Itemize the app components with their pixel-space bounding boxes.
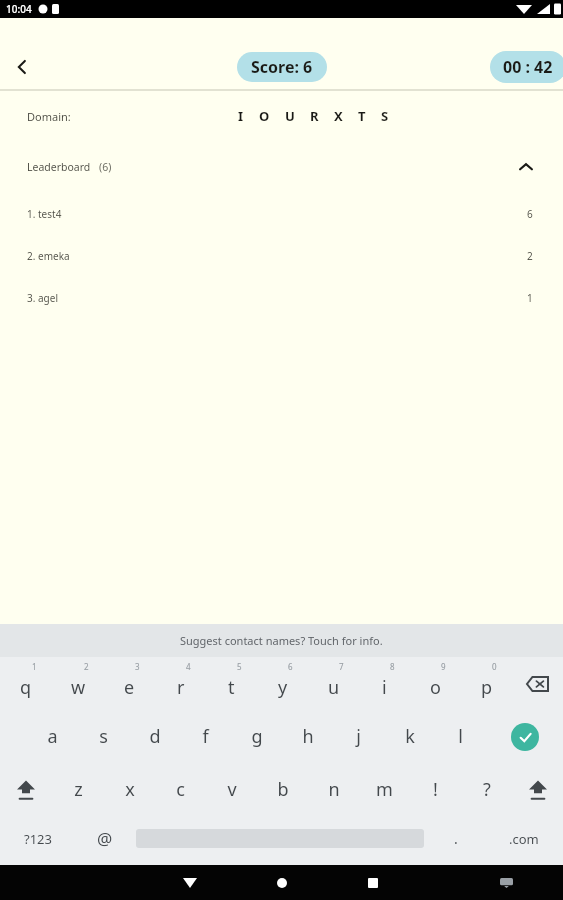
button[interactable]: Back <box>0 45 44 89</box>
button[interactable]: b <box>257 763 308 816</box>
staticText: 0 <box>492 661 497 672</box>
staticText: h <box>302 724 314 749</box>
button[interactable]: Back <box>170 865 210 900</box>
staticText: a <box>47 724 58 749</box>
staticText: x <box>125 777 135 802</box>
staticText: l <box>458 724 463 749</box>
button[interactable]: Leaderboard <box>0 141 563 193</box>
staticText: O <box>259 107 270 125</box>
button[interactable]: k <box>384 710 435 763</box>
staticText: 6 <box>527 207 533 221</box>
button[interactable]: Recents <box>353 865 393 900</box>
button[interactable]: 3 <box>104 657 155 710</box>
staticText: b <box>277 777 289 802</box>
button[interactable]: h <box>282 710 333 763</box>
staticText: v <box>227 777 237 802</box>
staticText: Suggest contact names? Touch for info. <box>180 633 383 648</box>
staticText: u <box>328 675 340 700</box>
staticText: 7 <box>339 661 344 672</box>
staticText: ? <box>483 777 491 802</box>
button[interactable]: ! <box>410 763 461 816</box>
button[interactable]: 2. emeka <box>0 235 563 277</box>
staticText: 2 <box>84 661 89 672</box>
button[interactable]: g <box>231 710 282 763</box>
button[interactable]: 3. agel <box>0 277 563 319</box>
button[interactable]: ? <box>461 763 512 816</box>
staticText: I <box>238 107 244 125</box>
button[interactable]: Hide keyboard <box>489 866 523 900</box>
button[interactable]: s <box>78 710 129 763</box>
staticText: 4 <box>186 661 191 672</box>
staticText: e <box>124 675 135 700</box>
staticText: k <box>405 724 415 749</box>
button[interactable]: Score: 6 <box>237 52 327 82</box>
staticText: X <box>334 107 343 125</box>
staticText: 9 <box>441 661 446 672</box>
staticText: w <box>71 675 86 700</box>
staticText: t <box>228 675 235 700</box>
staticText: 8 <box>390 661 395 672</box>
button[interactable]: 7 <box>308 657 359 710</box>
button[interactable]: . <box>427 816 484 861</box>
button[interactable]: z <box>52 763 104 816</box>
staticText: 1. test4 <box>27 207 62 221</box>
button[interactable]: l <box>435 710 486 763</box>
staticText: R <box>310 107 319 125</box>
staticText: d <box>149 724 161 749</box>
button[interactable]: Home <box>262 865 302 900</box>
staticText: 3 <box>135 661 140 672</box>
button[interactable]: Backspace <box>512 657 563 710</box>
button[interactable]: c <box>155 763 206 816</box>
button[interactable]: 0 <box>461 657 512 710</box>
button[interactable]: m <box>359 763 410 816</box>
staticText: 5 <box>237 661 242 672</box>
button[interactable]: v <box>206 763 257 816</box>
staticText: n <box>328 777 340 802</box>
staticText: s <box>99 724 108 749</box>
staticText: (6) <box>99 160 112 174</box>
staticText: 00 : 42 <box>503 56 553 78</box>
staticText: Score: 6 <box>251 56 313 78</box>
staticText: Leaderboard <box>27 160 91 174</box>
button[interactable]: ?123 <box>0 816 76 861</box>
button[interactable]: 2 <box>52 657 104 710</box>
button[interactable]: 8 <box>359 657 410 710</box>
staticText: z <box>74 777 83 802</box>
staticText: f <box>202 724 209 749</box>
staticText: p <box>481 675 493 700</box>
button[interactable]: j <box>333 710 384 763</box>
button[interactable]: f <box>180 710 231 763</box>
staticText: 1 <box>527 291 533 305</box>
staticText: q <box>20 675 32 700</box>
button[interactable]: x <box>104 763 155 816</box>
button[interactable]: 00 : 42 <box>490 51 563 83</box>
staticText: c <box>176 777 185 802</box>
button[interactable]: a <box>27 710 78 763</box>
button[interactable]: 9 <box>410 657 461 710</box>
button[interactable]: 1. test4 <box>0 193 563 235</box>
button[interactable]: 1 <box>0 657 52 710</box>
button[interactable]: 5 <box>206 657 257 710</box>
staticText: .com <box>509 830 539 848</box>
staticText: S <box>381 107 389 125</box>
button[interactable]: Suggest contact names? Touch for info. <box>0 624 563 657</box>
button[interactable]: n <box>308 763 359 816</box>
button[interactable]: Shift <box>512 763 563 816</box>
button[interactable]: 6 <box>257 657 308 710</box>
staticText: 10:04 <box>6 2 32 16</box>
button[interactable]: Shift <box>0 763 52 816</box>
button[interactable]: 4 <box>155 657 206 710</box>
staticText: ?123 <box>24 830 52 848</box>
staticText: 3. agel <box>27 291 58 305</box>
button[interactable]: Enter <box>486 710 563 763</box>
staticText: j <box>356 724 361 749</box>
staticText: y <box>278 675 288 700</box>
other: Collapse leaderboard <box>514 155 538 179</box>
button[interactable]: .com <box>484 816 563 861</box>
button[interactable]: d <box>129 710 180 763</box>
staticText: g <box>251 724 263 749</box>
staticText: 2 <box>527 249 533 263</box>
staticText: T <box>358 107 366 125</box>
button[interactable]: @ <box>76 816 133 861</box>
